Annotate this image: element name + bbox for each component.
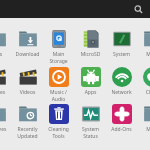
staticText: Archives: [0, 126, 12, 133]
staticText: More: [137, 126, 150, 133]
staticText: Main Storage: [43, 51, 74, 64]
button[interactable]: Download: [12, 27, 43, 58]
staticText: Download: [12, 51, 43, 58]
button[interactable]: MicroSD: [75, 27, 106, 58]
button[interactable]: System Status: [75, 102, 106, 139]
staticText: System Status: [75, 126, 106, 139]
staticText: Cleaning Tools: [43, 126, 74, 139]
staticText: Add-Ons: [106, 126, 137, 133]
staticText: Videos: [12, 89, 43, 96]
staticText: Apps: [75, 89, 106, 96]
button[interactable]: Docs: [0, 27, 12, 58]
staticText: Music / Audio: [43, 89, 74, 102]
button[interactable]: Main Storage: [43, 27, 74, 64]
button[interactable]: Search: [131, 2, 145, 16]
button[interactable]: Images: [0, 65, 12, 96]
button[interactable]: Add-Ons: [106, 102, 137, 133]
button[interactable]: Recently Updated: [12, 102, 43, 139]
button[interactable]: More: [137, 27, 150, 58]
button[interactable]: System: [106, 27, 137, 58]
button[interactable]: Cleaning Tools: [43, 102, 74, 139]
button[interactable]: Music / Audio: [43, 65, 74, 102]
staticText: Docs: [0, 51, 12, 58]
button[interactable]: Cloud: [137, 65, 150, 96]
staticText: Images: [0, 89, 12, 96]
staticText: MicroSD: [75, 51, 106, 58]
button[interactable]: Archives: [0, 102, 12, 133]
staticText: More: [137, 51, 150, 58]
button[interactable]: Apps: [75, 65, 106, 96]
staticText: Recently Updated: [12, 126, 43, 139]
staticText: Cloud: [137, 89, 150, 96]
button[interactable]: Videos: [12, 65, 43, 96]
staticText: System: [106, 51, 137, 58]
button[interactable]: Network: [106, 65, 137, 96]
staticText: Network: [106, 89, 137, 96]
button[interactable]: More: [137, 102, 150, 133]
